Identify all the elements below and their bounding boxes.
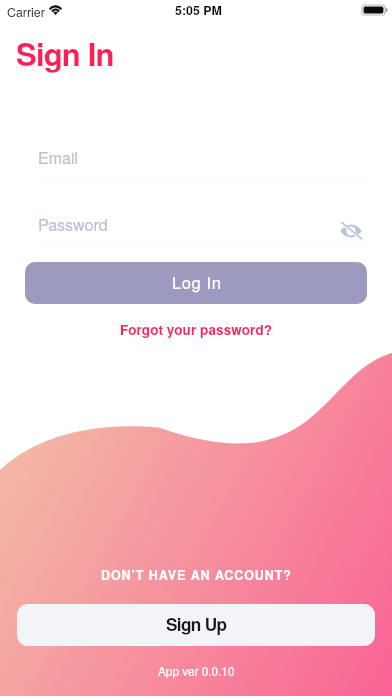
button[interactable]: Email bbox=[38, 146, 369, 169]
staticText: Carrier bbox=[7, 3, 45, 21]
button[interactable]: Show password bbox=[337, 217, 365, 245]
staticText: Log In bbox=[172, 270, 222, 294]
staticText: Sign In bbox=[16, 31, 114, 75]
staticText: DON’T HAVE AN ACCOUNT? bbox=[101, 566, 292, 584]
staticText: App ver 0.0.10 bbox=[158, 662, 235, 679]
button[interactable]: Sign Up bbox=[17, 604, 375, 646]
button[interactable]: Forgot your password? bbox=[112, 317, 281, 342]
button[interactable]: Password bbox=[38, 213, 341, 236]
staticText: Sign Up bbox=[166, 612, 227, 637]
button[interactable]: Log In bbox=[25, 262, 367, 304]
staticText: Forgot your password? bbox=[120, 320, 273, 339]
staticText: 5:05 PM bbox=[175, 1, 222, 19]
